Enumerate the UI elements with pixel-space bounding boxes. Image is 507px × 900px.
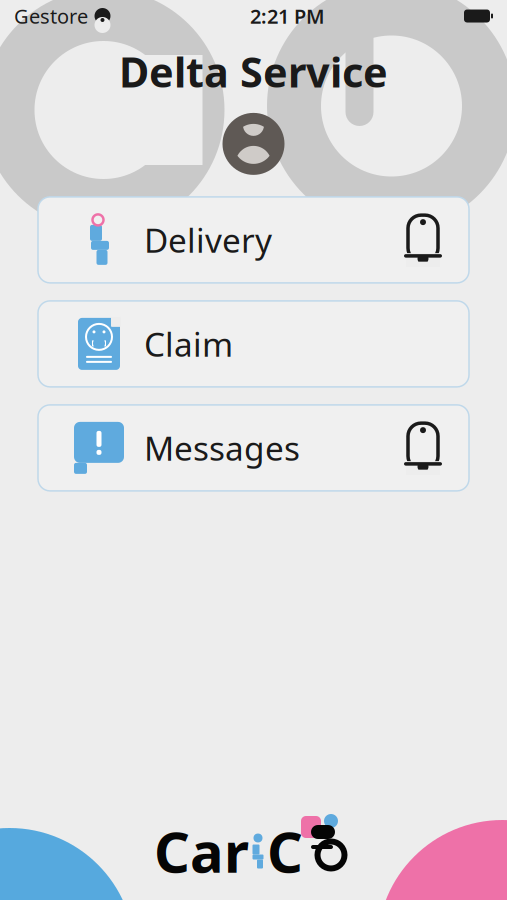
button[interactable]: Claim bbox=[38, 301, 469, 387]
button[interactable]: Messages bbox=[38, 405, 469, 491]
staticText: C bbox=[267, 814, 303, 888]
staticText: Messages bbox=[144, 426, 300, 470]
staticText: Claim bbox=[144, 322, 233, 366]
button[interactable]: Profile bbox=[222, 113, 284, 175]
staticText: Car bbox=[154, 814, 249, 888]
staticText: Delivery bbox=[144, 218, 272, 262]
button[interactable]: Delivery bbox=[38, 197, 469, 283]
staticText: Gestore bbox=[14, 3, 88, 29]
staticText: 2:21 PM bbox=[250, 3, 325, 29]
staticText: Delta Service bbox=[119, 44, 388, 99]
